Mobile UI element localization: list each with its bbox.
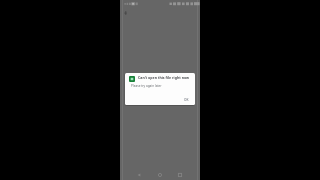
- staticText: Can't open this file right now: [138, 75, 190, 80]
- button[interactable]: Recent apps: [175, 170, 185, 180]
- other: Notifications: [124, 2, 138, 6]
- other: Spreadsheet file: [129, 76, 135, 82]
- other: Signal, Wi-Fi, battery and clock: [169, 2, 197, 6]
- button[interactable]: Home: [155, 170, 165, 180]
- staticText: OK: [184, 98, 189, 102]
- button[interactable]: OK: [182, 96, 191, 104]
- button[interactable]: Back: [134, 170, 144, 180]
- staticText: Please try again later: [131, 84, 162, 88]
